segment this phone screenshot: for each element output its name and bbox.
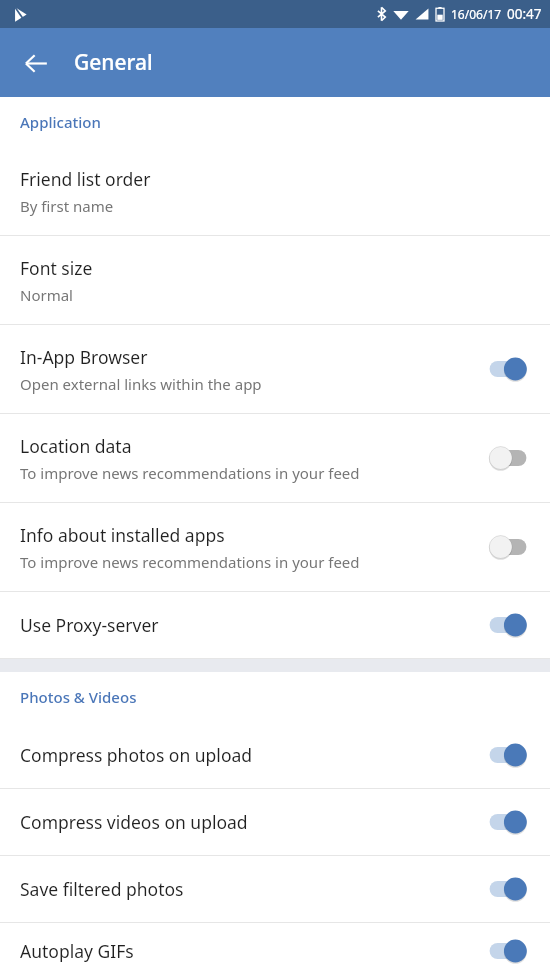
- staticText: Compress videos on upload: [20, 810, 478, 834]
- staticText: Normal: [20, 285, 73, 305]
- staticText: In-App Browser: [20, 345, 148, 369]
- staticText: Compress photos on upload: [20, 743, 478, 767]
- staticText: Friend list order: [20, 167, 151, 191]
- button[interactable]: Info about installed apps: [0, 503, 550, 591]
- button[interactable]: Toggle off: [488, 534, 528, 560]
- button[interactable]: Compress photos on upload: [0, 722, 550, 788]
- staticText: Info about installed apps: [20, 523, 225, 547]
- staticText: By first name: [20, 196, 114, 216]
- staticText: To improve news recommendations in your …: [20, 552, 360, 572]
- button[interactable]: Compress videos on upload: [0, 789, 550, 855]
- staticText: Save filtered photos: [20, 877, 478, 901]
- button[interactable]: Location data: [0, 414, 550, 502]
- staticText: General: [74, 48, 153, 77]
- button[interactable]: Font size: [0, 236, 550, 324]
- button[interactable]: Use Proxy-server: [0, 592, 550, 658]
- staticText: Photos & Videos: [20, 687, 137, 707]
- button[interactable]: Autoplay GIFs: [0, 923, 550, 979]
- button[interactable]: Toggle on: [488, 742, 528, 768]
- button[interactable]: Toggle on: [488, 809, 528, 835]
- button[interactable]: In-App Browser: [0, 325, 550, 413]
- button[interactable]: Toggle on: [488, 612, 528, 638]
- staticText: 16/06/17: [451, 6, 502, 22]
- staticText: Application: [20, 112, 101, 132]
- staticText: Open external links within the app: [20, 374, 262, 394]
- staticText: Autoplay GIFs: [20, 939, 478, 963]
- staticText: Font size: [20, 256, 93, 280]
- button[interactable]: Save filtered photos: [0, 856, 550, 922]
- button[interactable]: Toggle on: [488, 876, 528, 902]
- button[interactable]: Back: [12, 39, 60, 87]
- button[interactable]: Toggle on: [488, 938, 528, 964]
- staticText: 00:47: [507, 5, 542, 23]
- button[interactable]: Toggle on: [488, 356, 528, 382]
- button[interactable]: Toggle off: [488, 445, 528, 471]
- staticText: Use Proxy-server: [20, 613, 478, 637]
- staticText: Location data: [20, 434, 132, 458]
- staticText: To improve news recommendations in your …: [20, 463, 360, 483]
- button[interactable]: Friend list order: [0, 147, 550, 235]
